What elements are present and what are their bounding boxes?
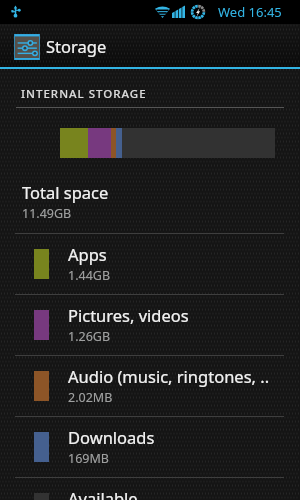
staticText: Available bbox=[68, 487, 138, 500]
staticText: Total space bbox=[22, 181, 109, 203]
staticText: 2.02MB bbox=[68, 389, 113, 406]
staticText: INTERNAL STORAGE bbox=[21, 86, 147, 102]
staticText: Storage bbox=[46, 35, 107, 57]
staticText: Downloads bbox=[68, 426, 155, 448]
button[interactable]: Pictures, videos bbox=[0, 295, 300, 355]
staticText: 1.26GB bbox=[68, 328, 111, 345]
button[interactable]: Storage bbox=[0, 24, 300, 67]
staticText: 169MB bbox=[68, 450, 109, 467]
button[interactable]: Total space bbox=[0, 172, 300, 232]
staticText: 1.44GB bbox=[68, 267, 111, 284]
staticText: Apps bbox=[68, 243, 107, 265]
button[interactable]: Downloads bbox=[0, 417, 300, 477]
button[interactable]: Audio (music, ringtones, .. bbox=[0, 356, 300, 416]
staticText: Wed 16:45 bbox=[218, 3, 282, 21]
button[interactable]: Available bbox=[0, 478, 300, 500]
staticText: Audio (music, ringtones, .. bbox=[68, 365, 270, 387]
staticText: 11.49GB bbox=[22, 205, 72, 222]
button[interactable]: Apps bbox=[0, 234, 300, 294]
staticText: Pictures, videos bbox=[68, 304, 189, 326]
other: USB connected bbox=[9, 5, 22, 18]
